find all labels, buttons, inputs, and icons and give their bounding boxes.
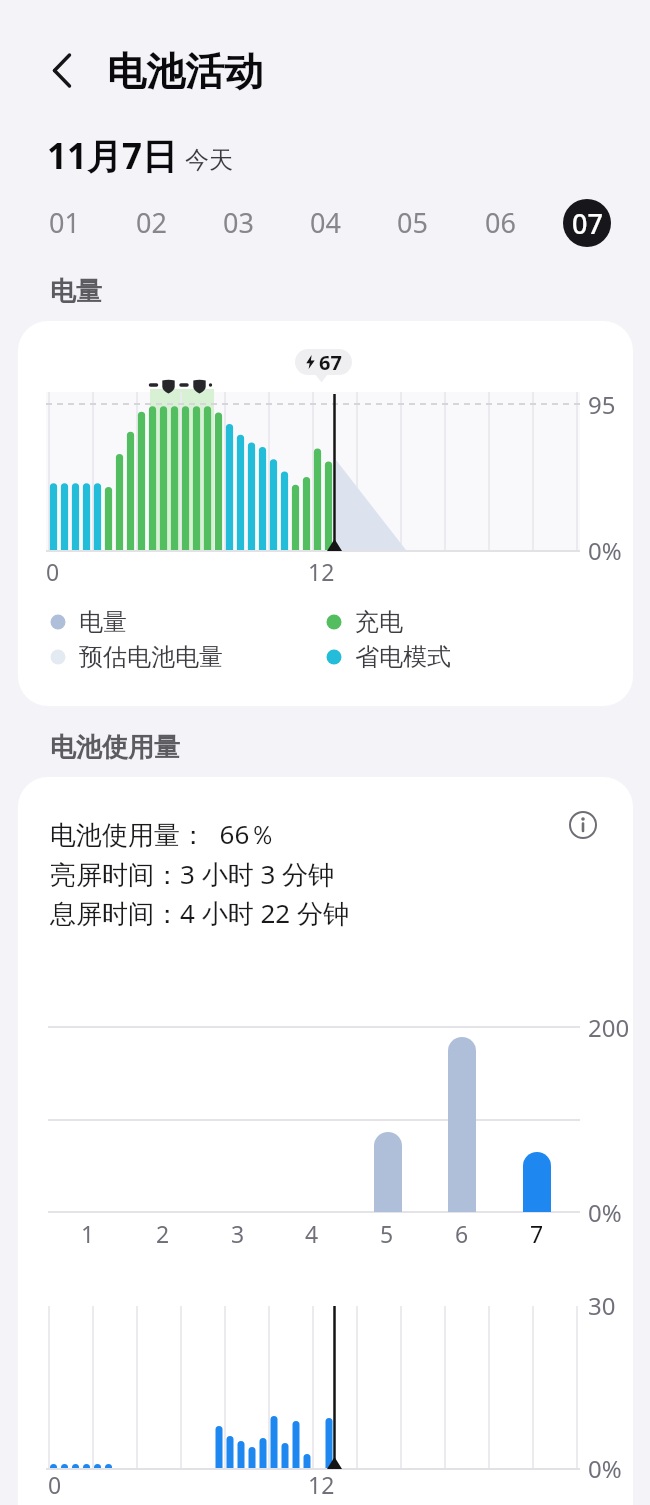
staticText: 12 — [308, 1469, 335, 1500]
staticText: 2 — [156, 1218, 170, 1249]
button[interactable]: 06 — [468, 194, 532, 250]
staticText: 04 — [310, 204, 341, 241]
staticText: 200 — [588, 1011, 630, 1044]
staticText: 03 — [223, 204, 254, 241]
staticText: 6 — [455, 1218, 469, 1249]
staticText: 7 — [530, 1218, 544, 1249]
staticText: 01 — [49, 204, 80, 241]
staticText: 0% — [588, 1452, 622, 1485]
staticText: 5 — [380, 1218, 394, 1249]
button[interactable]: 01 — [32, 194, 96, 250]
staticText: 4 — [305, 1218, 319, 1249]
staticText: 3 — [231, 1218, 245, 1249]
staticText: 0% — [588, 534, 622, 567]
staticText: 12 — [308, 556, 335, 587]
staticText: 电量 — [50, 275, 102, 308]
staticText: 02 — [136, 204, 167, 241]
staticText: 充电 — [355, 607, 403, 637]
staticText: 0 — [46, 556, 60, 587]
staticText: 亮屏时间：3 小时 3 分钟 — [50, 856, 335, 892]
staticText: 预估电池电量 — [79, 642, 223, 672]
staticText: 息屏时间：4 小时 22 分钟 — [50, 895, 349, 931]
button[interactable]: 04 — [293, 194, 357, 250]
staticText: 06 — [485, 204, 516, 241]
button[interactable]: 02 — [119, 194, 183, 250]
staticText: 电量 — [79, 607, 127, 637]
staticText: 今天 — [185, 145, 233, 175]
staticText: 07 — [572, 205, 603, 242]
staticText: 电池活动 — [107, 47, 263, 95]
staticText: 11月7日 — [47, 132, 178, 180]
staticText: 省电模式 — [355, 642, 451, 672]
staticText: 0 — [48, 1469, 62, 1500]
staticText: 电池使用量 — [50, 731, 180, 764]
staticText: 0% — [588, 1196, 622, 1229]
button[interactable]: 05 — [380, 194, 444, 250]
staticText: 95 — [588, 388, 616, 421]
staticText: 30 — [588, 1289, 616, 1322]
button[interactable] — [561, 803, 605, 847]
staticText: 电池使用量： 66％ — [50, 816, 276, 852]
staticText: 05 — [397, 204, 428, 241]
button[interactable] — [40, 52, 84, 100]
staticText: 1 — [81, 1218, 95, 1249]
staticText: 67 — [319, 349, 342, 375]
button[interactable]: 03 — [206, 194, 270, 250]
button[interactable]: 07 — [563, 199, 611, 247]
